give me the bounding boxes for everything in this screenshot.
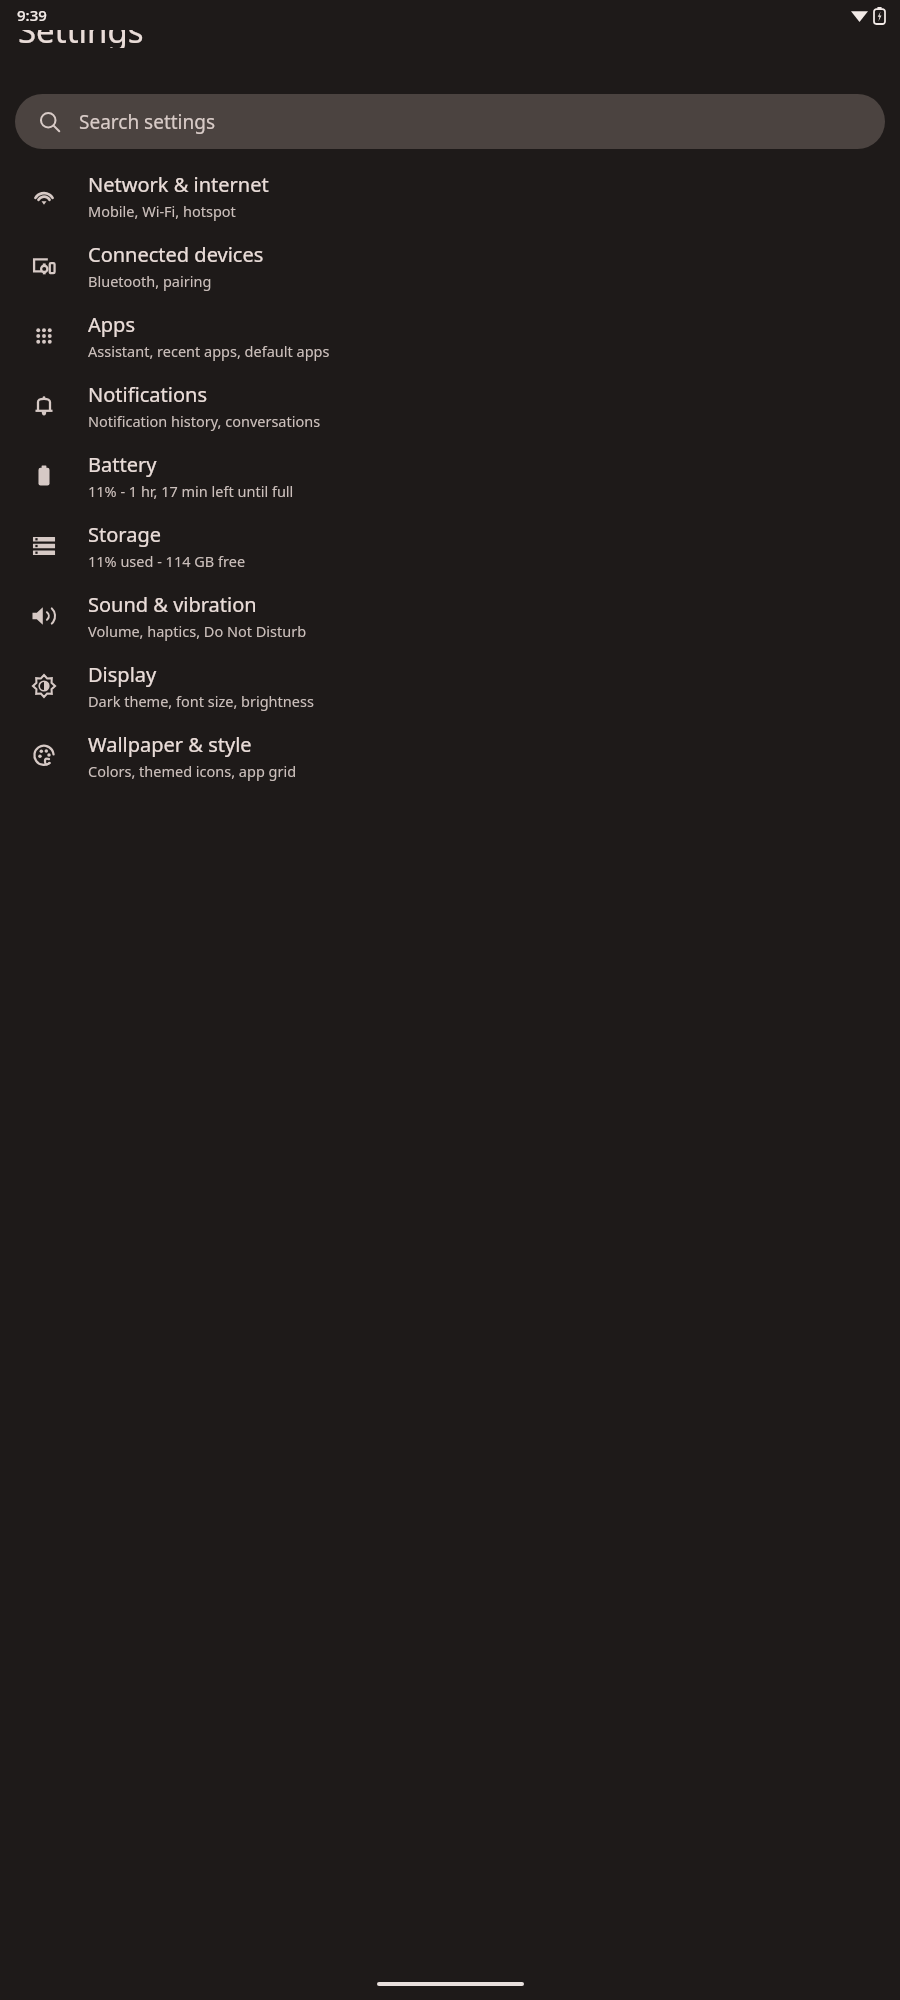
staticText: Connected devices bbox=[88, 241, 264, 268]
staticText: 11% used - 114 GB free bbox=[88, 551, 246, 571]
staticText: Notification history, conversations bbox=[88, 411, 321, 431]
staticText: Assistant, recent apps, default apps bbox=[88, 341, 330, 361]
staticText: Bluetooth, pairing bbox=[88, 271, 212, 291]
button[interactable]: Connected devices bbox=[0, 231, 900, 301]
button[interactable]: Storage bbox=[0, 511, 900, 581]
staticText: Network & internet bbox=[88, 171, 269, 198]
button[interactable]: Search settings bbox=[15, 94, 885, 149]
button[interactable]: Display bbox=[0, 651, 900, 721]
button[interactable]: Network & internet bbox=[0, 161, 900, 231]
staticText: Display bbox=[88, 661, 157, 688]
button[interactable]: Wallpaper & style bbox=[0, 721, 900, 791]
staticText: 11% - 1 hr, 17 min left until full bbox=[88, 481, 294, 501]
staticText: Sound & vibration bbox=[88, 591, 257, 618]
button[interactable]: Apps bbox=[0, 301, 900, 371]
staticText: Apps bbox=[88, 311, 135, 338]
staticText: Storage bbox=[88, 521, 161, 548]
button[interactable]: Sound & vibration bbox=[0, 581, 900, 651]
staticText: Mobile, Wi-Fi, hotspot bbox=[88, 201, 236, 221]
staticText: Wallpaper & style bbox=[88, 731, 252, 758]
staticText: Dark theme, font size, brightness bbox=[88, 691, 314, 711]
staticText: Notifications bbox=[88, 381, 207, 408]
staticText: Colors, themed icons, app grid bbox=[88, 761, 297, 781]
staticText: Volume, haptics, Do Not Disturb bbox=[88, 621, 307, 641]
staticText: 9:39 bbox=[17, 5, 47, 25]
button[interactable]: Battery bbox=[0, 441, 900, 511]
staticText: Search settings bbox=[79, 109, 216, 135]
staticText: Battery bbox=[88, 451, 157, 478]
staticText: Settings bbox=[18, 30, 144, 48]
button[interactable]: Notifications bbox=[0, 371, 900, 441]
